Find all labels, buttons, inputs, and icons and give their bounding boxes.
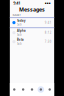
- staticText: 8:12: [45, 31, 52, 34]
- staticText: 9:41: [45, 21, 52, 24]
- staticText: Sub: [17, 23, 22, 26]
- button[interactable]: Tab 0: [10, 84, 19, 95]
- button[interactable]: Tab 3: [36, 84, 45, 95]
- staticText: ▪▪▪: [45, 1, 51, 4]
- staticText: Alpha: [17, 29, 26, 32]
- button[interactable]: Tab 4: [45, 84, 54, 95]
- staticText: Sub: [17, 33, 22, 36]
- button[interactable]: Beta: [10, 37, 54, 46]
- staticText: 9:41: [13, 0, 20, 6]
- staticText: TODAY: [12, 13, 21, 17]
- button[interactable]: Tab 1: [19, 84, 28, 95]
- button[interactable]: Tab 2: [28, 84, 36, 95]
- button[interactable]: Alpha: [10, 28, 54, 37]
- staticText: 7:30: [45, 40, 52, 43]
- staticText: Today: [17, 19, 25, 22]
- staticText: Sub: [17, 42, 22, 45]
- staticText: Beta: [17, 38, 24, 41]
- staticText: Messages: [19, 6, 45, 13]
- button[interactable]: Today: [10, 18, 54, 27]
